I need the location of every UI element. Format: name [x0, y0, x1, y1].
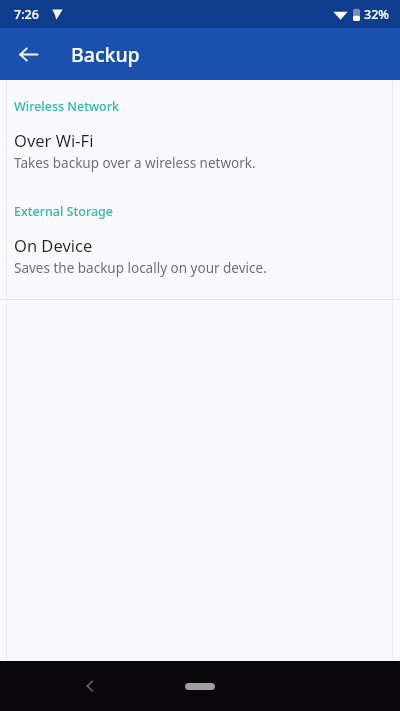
staticText: Saves the backup locally on your device. — [14, 259, 267, 277]
staticText: Takes backup over a wireless network. — [14, 154, 256, 172]
staticText: 32% — [364, 6, 389, 23]
staticText: Over Wi-Fi — [14, 129, 94, 151]
staticText: On Device — [14, 234, 93, 256]
button[interactable]: Over Wi-Fi — [0, 119, 400, 178]
staticText: External Storage — [14, 203, 114, 220]
button[interactable]: Back — [6, 32, 50, 76]
staticText: Wireless Network — [14, 98, 119, 115]
button[interactable]: On Device — [0, 224, 400, 283]
staticText: 7:26 — [14, 6, 39, 23]
button[interactable]: Back — [70, 666, 110, 706]
button[interactable]: Home — [168, 673, 232, 699]
staticText: Backup — [71, 41, 140, 68]
